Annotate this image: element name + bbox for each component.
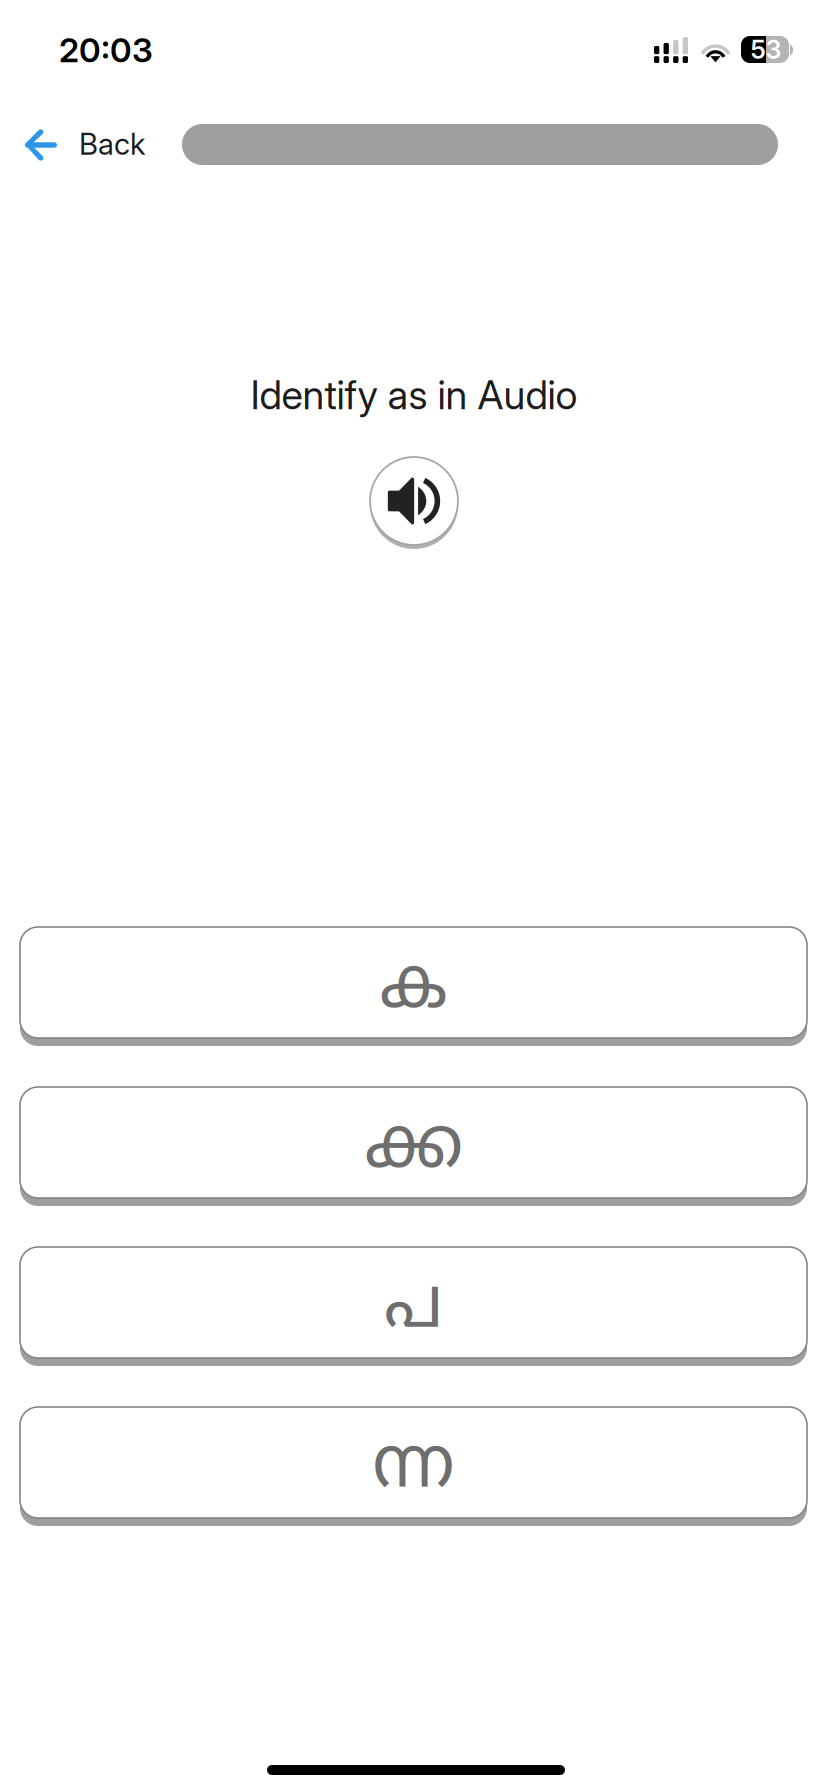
staticText: Identify as in Audio — [250, 371, 577, 419]
staticText: പ — [384, 1265, 443, 1354]
staticText: ക — [379, 945, 447, 1034]
button[interactable]: Play audio — [370, 457, 458, 549]
button[interactable]: ന്ന — [20, 1407, 807, 1526]
staticText: ക്ക — [364, 1105, 462, 1194]
button[interactable]: ക്ക — [20, 1087, 807, 1206]
button[interactable]: ക — [20, 927, 807, 1046]
staticText: Back — [79, 126, 146, 162]
button[interactable]: പ — [20, 1247, 807, 1366]
staticText: ന്ന — [372, 1425, 454, 1514]
button[interactable]: Back — [0, 106, 170, 182]
staticText: 53 — [750, 34, 781, 65]
staticText: 20:03 — [59, 30, 153, 70]
